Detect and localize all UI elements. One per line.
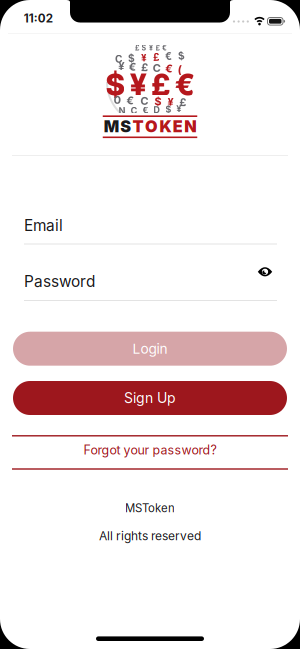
staticText: Password — [24, 272, 95, 291]
staticText: £ — [135, 44, 139, 52]
staticText: € — [129, 61, 137, 74]
staticText: € — [175, 66, 195, 103]
staticText: C — [140, 94, 148, 108]
staticText: MSToken — [125, 501, 175, 515]
staticText: ¥ — [149, 44, 153, 52]
staticText: $ — [178, 51, 185, 64]
staticText: D — [153, 105, 160, 115]
staticText: € — [165, 51, 172, 64]
staticText: Forgot your password? — [83, 442, 216, 457]
staticText: $ — [128, 51, 135, 64]
staticText: S — [120, 116, 131, 136]
staticText: ¥ — [167, 94, 173, 108]
staticText: N — [184, 116, 196, 136]
staticText: C — [130, 105, 137, 115]
staticText: € — [126, 94, 134, 108]
staticText: 0 — [113, 94, 120, 108]
staticText: N — [118, 105, 125, 115]
staticText: All rights reserved — [99, 529, 201, 543]
staticText: T — [133, 116, 144, 136]
staticText: £ — [153, 51, 159, 64]
staticText: $ — [105, 66, 125, 103]
staticText: 11:02 — [24, 11, 53, 25]
staticText: € — [162, 44, 167, 52]
staticText: ¥ — [141, 51, 147, 64]
staticText: ¥ — [118, 61, 124, 74]
staticText: ( — [178, 61, 182, 74]
staticText: £ — [141, 61, 148, 74]
staticText: S — [141, 44, 146, 52]
staticText: Email — [24, 216, 63, 235]
staticText: ¥ — [176, 105, 181, 115]
staticText: € — [165, 61, 173, 74]
staticText: ¥ — [130, 66, 147, 103]
staticText: C — [115, 51, 122, 64]
staticText: C — [153, 61, 161, 74]
staticText: K — [159, 116, 171, 136]
staticText: E — [173, 116, 183, 136]
staticText: £ — [179, 94, 186, 108]
staticText: £ — [151, 66, 170, 103]
staticText: € — [142, 105, 148, 115]
staticText: $ — [165, 105, 171, 115]
staticText: Login — [132, 340, 167, 357]
staticText: Sign Up — [124, 389, 176, 406]
staticText: M — [104, 116, 119, 136]
staticText: £ — [155, 44, 159, 52]
staticText: $ — [154, 94, 161, 108]
staticText: O — [145, 116, 158, 136]
